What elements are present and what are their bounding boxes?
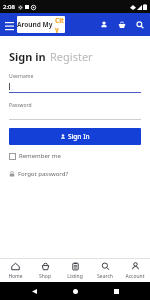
button[interactable]: Listing <box>60 259 90 282</box>
button[interactable]: Account <box>96 17 111 32</box>
staticText: Around My <box>17 20 55 29</box>
button[interactable]: Account <box>120 259 150 282</box>
button[interactable]: Search <box>90 259 120 282</box>
staticText: Username <box>9 73 34 80</box>
staticText: Remember me <box>19 152 61 160</box>
staticText: Forgot password? <box>18 170 69 178</box>
button[interactable] <box>9 80 141 93</box>
staticText: Shop <box>39 273 51 280</box>
staticText: City <box>55 16 65 33</box>
staticText: Password <box>9 102 32 109</box>
button[interactable]: Remember me <box>9 152 61 160</box>
button[interactable]: Sign in <box>9 49 46 64</box>
staticText: Listing <box>67 273 83 280</box>
staticText: Sign In <box>68 132 90 141</box>
button[interactable]: Recent apps <box>109 284 123 298</box>
staticText: Home <box>8 273 23 280</box>
button[interactable]: Home <box>0 259 30 282</box>
staticText: Account <box>125 273 145 280</box>
button[interactable]: Back <box>27 284 41 298</box>
staticText: Search <box>97 273 113 280</box>
button[interactable]: Search <box>132 17 147 32</box>
button[interactable]: Around My <box>17 16 65 33</box>
button[interactable]: Home <box>68 284 82 298</box>
button[interactable]: Sign In <box>9 128 141 145</box>
button[interactable]: Register <box>50 49 93 64</box>
button[interactable]: Cart <box>114 17 129 32</box>
button[interactable]: Open navigation menu <box>2 18 16 32</box>
button[interactable]: Shop <box>30 259 60 282</box>
staticText: 2:08 <box>3 3 15 11</box>
button[interactable]: Forgot password? <box>9 170 69 178</box>
button[interactable] <box>9 109 141 120</box>
